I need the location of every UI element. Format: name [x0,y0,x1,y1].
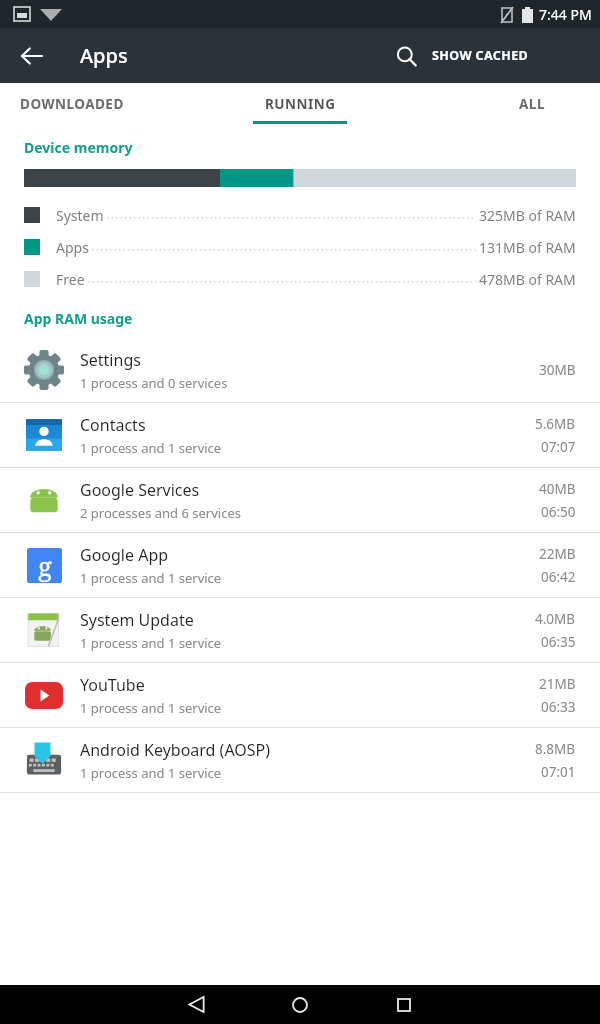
staticText: Contacts [80,414,146,436]
staticText: 1 process and 1 service [80,569,222,587]
staticText: 06:42 [541,568,576,586]
staticText: System [56,206,104,225]
staticText: 1 process and 1 service [80,439,222,457]
staticText: 325MB of RAM [479,206,576,225]
staticText: 22MB [539,545,576,563]
staticText: 07:01 [541,763,576,781]
staticText: 5.6MB [535,415,576,433]
staticText: 1 process and 1 service [80,634,222,652]
button[interactable]: g [0,533,600,598]
staticText: Google App [80,544,169,566]
staticText: YouTube [80,674,145,696]
staticText: 1 process and 0 services [80,374,228,392]
button[interactable]: Contacts [0,403,600,468]
button[interactable]: SHOW CACHED PROCESSES [432,28,600,83]
button[interactable]: Google Services [0,468,600,533]
button[interactable]: System Update [0,598,600,663]
staticText: Device memory [24,138,133,157]
staticText: 2 processes and 6 services [80,504,241,522]
staticText: 131MB of RAM [479,238,576,257]
button[interactable]: System [0,199,600,231]
staticText: 7:44 PM [539,5,592,24]
staticText: Android Keyboard (AOSP) [80,739,271,761]
staticText: 06:50 [541,503,576,521]
staticText: g [38,548,52,583]
staticText: RUNNING [265,95,336,113]
staticText: 30MB [539,361,576,379]
button[interactable]: Recent apps [372,985,436,1024]
button[interactable]: Android Keyboard (AOSP) [0,728,600,793]
staticText: 40MB [539,480,576,498]
staticText: DOWNLOADED [20,95,124,113]
button[interactable]: Free [0,263,600,295]
staticText: Apps [80,42,128,69]
button[interactable]: Back [10,34,54,78]
button[interactable]: Settings [0,338,600,403]
button[interactable]: YouTube [0,663,600,728]
button[interactable]: Apps [0,231,600,263]
staticText: Apps [56,238,89,257]
button[interactable]: Home [268,985,332,1024]
button[interactable]: DOWNLOADED [0,83,200,124]
staticText: 21MB [539,675,576,693]
staticText: 478MB of RAM [479,270,576,289]
staticText: 06:33 [541,698,576,716]
staticText: 8.8MB [535,740,576,758]
staticText: App RAM usage [24,309,133,328]
staticText: SHOW CACHED PROCESSES [432,47,600,64]
staticText: System Update [80,609,194,631]
button[interactable]: Search [385,35,427,77]
staticText: Free [56,270,85,289]
staticText: 06:35 [541,633,576,651]
staticText: ALL [519,95,545,113]
staticText: 1 process and 1 service [80,764,222,782]
button[interactable]: Back [164,985,228,1024]
staticText: 07:07 [541,438,576,456]
staticText: Settings [80,349,141,371]
button[interactable]: RUNNING [200,83,400,124]
staticText: 1 process and 1 service [80,699,222,717]
button[interactable]: ALL [400,83,600,124]
staticText: 4.0MB [535,610,576,628]
staticText: Google Services [80,479,200,501]
